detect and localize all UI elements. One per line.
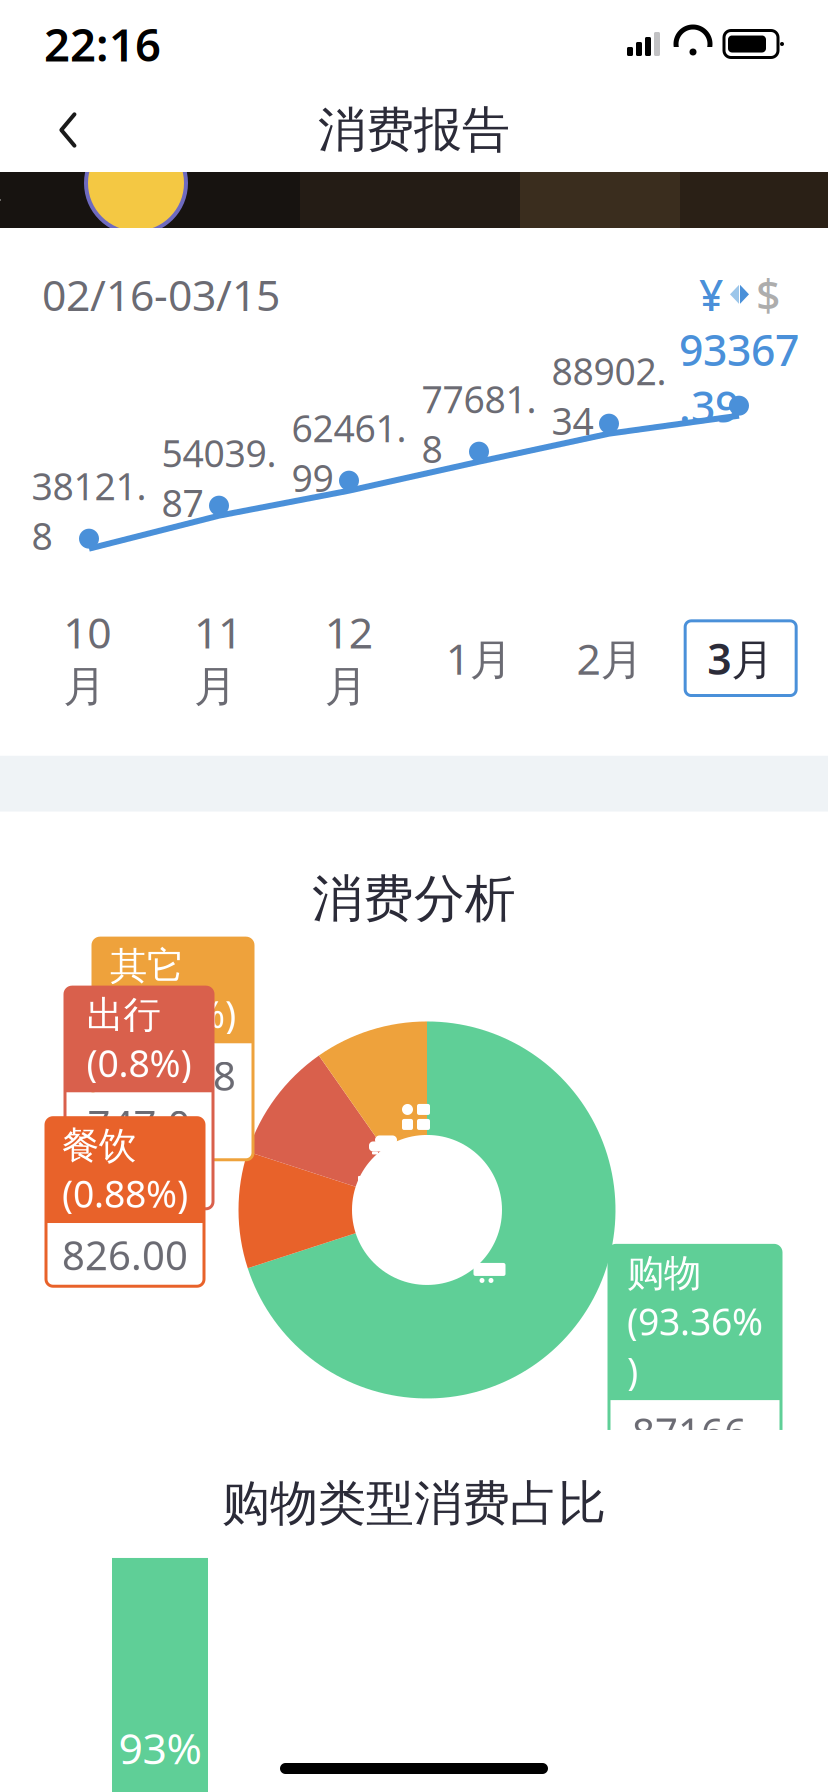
staticText: 3月 — [707, 630, 774, 687]
button[interactable]: 1月 — [424, 621, 535, 696]
staticText: 12月 — [325, 604, 373, 713]
staticText: 消费报告 — [318, 100, 510, 159]
staticText: 其它(4.96%) — [110, 943, 236, 1038]
staticText: 2月 — [576, 630, 643, 687]
staticText: 62461.99 — [291, 403, 406, 502]
button[interactable]: 3月 — [685, 621, 796, 696]
button[interactable]: 10月 — [41, 595, 133, 722]
staticText: 77681.8 — [421, 374, 536, 473]
staticText: 购物(93.36%) — [627, 1250, 763, 1395]
staticText: 93367.39 — [679, 321, 799, 434]
staticText: 购物类型消费占比 — [222, 1474, 606, 1533]
staticText: $ — [756, 266, 780, 323]
button[interactable]: 12月 — [303, 595, 395, 722]
button[interactable]: 2月 — [554, 621, 665, 696]
staticText: 消费分析 — [312, 868, 516, 930]
button[interactable]: 切换币种 — [693, 262, 786, 327]
staticText: 1月 — [446, 630, 513, 687]
staticText: 出行(0.8%) — [86, 992, 191, 1087]
staticText: 11月 — [194, 604, 242, 713]
button[interactable]: 返回 — [32, 94, 104, 166]
staticText: 餐饮(0.88%) — [62, 1123, 188, 1218]
staticText: 88902.34 — [551, 346, 666, 445]
staticText: 38121.8 — [31, 461, 146, 560]
staticText: 10月 — [63, 604, 111, 713]
staticText: ¥ — [699, 266, 723, 323]
staticText: 02/16-03/15 — [42, 266, 280, 323]
staticText: 93% — [118, 1719, 201, 1776]
button[interactable]: 11月 — [172, 595, 264, 722]
staticText: 54039.87 — [161, 428, 276, 527]
staticText: 747.00 — [87, 1098, 190, 1204]
staticText: 22:16 — [44, 14, 161, 74]
staticText: 87166.55 — [632, 1405, 758, 1511]
staticText: 4627.84 — [110, 1049, 236, 1155]
staticText: 826.00 — [62, 1228, 188, 1281]
